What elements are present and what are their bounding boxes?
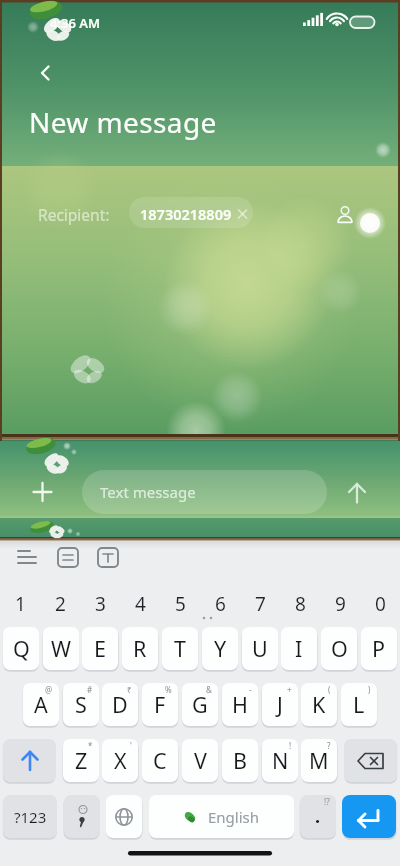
button[interactable] bbox=[26, 476, 59, 509]
staticText: L bbox=[353, 690, 365, 719]
staticText: Z bbox=[75, 746, 88, 775]
staticText: & bbox=[206, 684, 212, 695]
button[interactable]: . bbox=[300, 795, 336, 838]
button[interactable]: 4 bbox=[120, 585, 160, 623]
button[interactable] bbox=[342, 795, 396, 838]
button[interactable]: A bbox=[23, 683, 59, 726]
button[interactable]: U bbox=[242, 627, 278, 670]
button[interactable] bbox=[64, 795, 100, 838]
staticText: Y bbox=[214, 634, 227, 663]
button[interactable]: J bbox=[262, 683, 298, 726]
button[interactable] bbox=[12, 544, 42, 574]
button[interactable] bbox=[344, 739, 397, 782]
button[interactable]: C bbox=[142, 739, 178, 782]
button[interactable]: X bbox=[102, 739, 138, 782]
button[interactable]: F bbox=[142, 683, 178, 726]
staticText: 2 bbox=[55, 591, 66, 617]
button[interactable]: S bbox=[63, 683, 99, 726]
staticText: 4:36 AM bbox=[50, 14, 101, 32]
button[interactable]: 8 bbox=[280, 585, 320, 623]
staticText: # bbox=[87, 684, 93, 695]
staticText: + bbox=[287, 684, 292, 695]
staticText: D bbox=[112, 690, 128, 719]
staticText: English bbox=[208, 807, 260, 827]
button[interactable]: O bbox=[321, 627, 357, 670]
staticText: 7 bbox=[255, 591, 266, 617]
button[interactable]: R bbox=[122, 627, 158, 670]
button[interactable]: V bbox=[182, 739, 218, 782]
staticText: K bbox=[312, 690, 326, 719]
staticText: % bbox=[165, 684, 172, 695]
staticText: 9 bbox=[335, 591, 346, 617]
staticText: X bbox=[114, 746, 127, 775]
staticText: 8 bbox=[295, 591, 306, 617]
button[interactable] bbox=[32, 57, 64, 89]
button[interactable]: 1 bbox=[0, 585, 40, 623]
button[interactable]: 18730218809 bbox=[134, 198, 252, 228]
staticText: J bbox=[277, 690, 283, 719]
staticText: 3 bbox=[95, 591, 106, 617]
staticText: H bbox=[232, 690, 248, 719]
staticText: 18730218809 bbox=[140, 204, 232, 224]
staticText: New message bbox=[29, 103, 217, 141]
button[interactable]: E bbox=[82, 627, 118, 670]
staticText: * bbox=[88, 740, 93, 751]
staticText: M bbox=[309, 746, 329, 775]
button[interactable]: W bbox=[43, 627, 79, 670]
button[interactable] bbox=[92, 544, 122, 574]
button[interactable]: L bbox=[341, 683, 377, 726]
staticText: 0 bbox=[375, 591, 386, 617]
button[interactable]: N bbox=[262, 739, 298, 782]
button[interactable]: 3 bbox=[80, 585, 120, 623]
staticText: ( bbox=[328, 684, 331, 695]
button[interactable]: 7 bbox=[240, 585, 280, 623]
staticText: Recipient: bbox=[38, 204, 110, 225]
button[interactable]: I bbox=[281, 627, 317, 670]
button[interactable]: K bbox=[301, 683, 337, 726]
button[interactable]: Y bbox=[202, 627, 238, 670]
staticText: ' bbox=[130, 740, 132, 751]
staticText: @ bbox=[45, 684, 53, 695]
button[interactable] bbox=[3, 739, 56, 782]
staticText: 1 bbox=[15, 591, 26, 617]
button[interactable]: 2 bbox=[40, 585, 80, 623]
staticText: E bbox=[94, 634, 106, 663]
staticText: . bbox=[315, 804, 321, 829]
button[interactable] bbox=[106, 795, 142, 838]
staticText: F bbox=[154, 690, 166, 719]
staticText: P bbox=[372, 634, 386, 663]
button[interactable] bbox=[341, 476, 374, 509]
button[interactable] bbox=[52, 544, 82, 574]
staticText: G bbox=[192, 690, 208, 719]
staticText: U bbox=[252, 634, 268, 663]
button[interactable] bbox=[330, 198, 360, 228]
button[interactable]: G bbox=[182, 683, 218, 726]
button[interactable]: H bbox=[222, 683, 258, 726]
staticText: ?123 bbox=[14, 807, 47, 827]
button[interactable]: Z bbox=[63, 739, 99, 782]
staticText: A bbox=[34, 690, 48, 719]
button[interactable]: 0 bbox=[360, 585, 400, 623]
button[interactable]: M bbox=[301, 739, 337, 782]
staticText: W bbox=[51, 634, 71, 663]
staticText: B bbox=[233, 746, 247, 775]
button[interactable]: Text message bbox=[82, 470, 327, 514]
staticText: ) bbox=[368, 684, 371, 695]
button[interactable]: English bbox=[149, 795, 294, 838]
button[interactable]: D bbox=[102, 683, 138, 726]
button[interactable]: 5 bbox=[160, 585, 200, 623]
button[interactable]: Q bbox=[3, 627, 39, 670]
staticText: I bbox=[295, 634, 303, 663]
button[interactable]: B bbox=[222, 739, 258, 782]
staticText: V bbox=[194, 746, 207, 775]
staticText: C bbox=[153, 746, 167, 775]
button[interactable]: ?123 bbox=[3, 795, 57, 838]
staticText: ? bbox=[327, 740, 331, 751]
button[interactable]: 6 bbox=[200, 585, 240, 623]
button[interactable]: P bbox=[361, 627, 397, 670]
staticText: O bbox=[331, 634, 348, 663]
staticText: R bbox=[133, 634, 147, 663]
button[interactable]: 9 bbox=[320, 585, 360, 623]
staticText: S bbox=[75, 690, 87, 719]
button[interactable]: T bbox=[162, 627, 198, 670]
